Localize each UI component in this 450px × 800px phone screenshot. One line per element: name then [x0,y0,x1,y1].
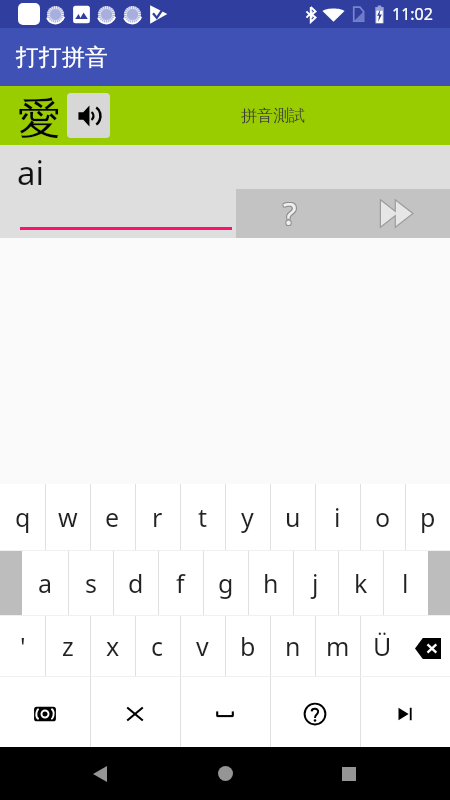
button[interactable]: Voice input [0,677,90,747]
button[interactable]: u [270,484,315,550]
button[interactable]: Recents [285,747,450,800]
button[interactable]: c [135,616,180,676]
staticText: z [62,629,74,663]
staticText: j [312,566,319,600]
staticText: u [285,500,301,534]
button[interactable]: t [180,484,225,550]
button[interactable]: l [383,551,428,615]
staticText: k [354,566,368,600]
staticText: p [420,500,436,534]
button[interactable]: Skip [343,189,450,238]
staticText: v [196,629,209,663]
staticText: d [128,566,144,600]
staticText: ? [284,193,298,235]
button[interactable]: f [158,551,203,615]
button[interactable]: s [68,551,113,615]
staticText: Ü [373,629,392,663]
staticText: ? [283,193,297,235]
button[interactable]: k [338,551,383,615]
staticText: c [151,629,164,663]
button[interactable]: r [135,484,180,550]
button[interactable]: Close [90,677,180,747]
button[interactable]: z [45,616,90,676]
button[interactable]: Next [360,677,450,747]
button[interactable]: Hint [236,189,343,238]
button[interactable]: p [405,484,450,550]
button[interactable]: x [90,616,135,676]
staticText: b [240,629,256,663]
button[interactable]: ' [0,616,45,676]
button[interactable]: Backspace [405,616,450,676]
button[interactable]: b [225,616,270,676]
staticText: x [106,629,120,663]
button[interactable]: q [0,484,45,550]
button[interactable]: i [315,484,360,550]
staticText: ? [282,192,296,234]
button[interactable]: w [45,484,90,550]
staticText: ? [282,191,296,233]
button[interactable]: n [270,616,315,676]
staticText: 11:02 [392,3,433,25]
staticText: a [38,566,53,600]
staticText: l [402,566,409,600]
staticText: e [105,500,120,534]
button[interactable]: Help [270,677,360,747]
button[interactable]: y [225,484,270,550]
button[interactable]: Back [0,747,165,800]
staticText: f [176,566,185,600]
button[interactable]: a [22,551,68,615]
button[interactable]: d [113,551,158,615]
staticText: q [15,500,31,534]
button[interactable]: e [90,484,135,550]
staticText: y [241,500,254,534]
staticText: t [198,500,208,534]
button[interactable]: m [315,616,360,676]
button[interactable]: Play sound [67,93,110,138]
staticText: m [326,629,350,663]
staticText: g [218,566,234,600]
staticText: s [85,566,97,600]
staticText: ? [284,192,298,234]
staticText: ai [17,150,45,195]
staticText: i [334,500,341,534]
button[interactable]: h [248,551,293,615]
button[interactable]: v [180,616,225,676]
staticText: ? [284,191,298,233]
staticText: r [152,500,163,534]
button[interactable]: j [293,551,338,615]
button[interactable]: Space [180,677,270,747]
staticText: ? [283,192,297,234]
staticText: 拼音測試 [241,106,305,126]
staticText: h [263,566,279,600]
staticText: ' [20,629,26,663]
staticText: ? [283,191,297,233]
staticText: 愛 [18,92,61,146]
staticText: ? [282,193,296,235]
staticText: o [375,500,391,534]
button[interactable]: g [203,551,248,615]
button[interactable]: Home [165,747,285,800]
staticText: w [58,500,78,534]
staticText: 打打拼音 [16,43,108,72]
button[interactable]: o [360,484,405,550]
staticText: n [285,629,301,663]
button[interactable]: Ü [360,616,405,676]
